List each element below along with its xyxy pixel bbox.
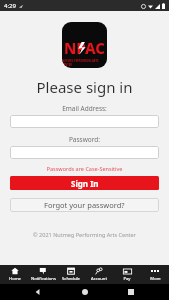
staticText: More xyxy=(150,276,161,282)
button[interactable]: Recents xyxy=(122,284,140,300)
staticText: Schedule xyxy=(62,276,80,282)
button[interactable] xyxy=(10,146,159,159)
staticText: 4:29 xyxy=(4,2,16,10)
staticText: NUTMEG PERFORMING ARTS CENTER xyxy=(62,59,107,67)
button[interactable]: Sign In xyxy=(10,176,159,190)
button[interactable]: Home xyxy=(0,265,29,284)
staticText: Notifications xyxy=(31,276,56,282)
staticText: Account xyxy=(91,276,107,282)
staticText: Sign In xyxy=(71,178,99,189)
staticText: NPAC xyxy=(64,38,105,58)
button[interactable]: Notifications xyxy=(29,265,57,284)
button[interactable]: Home xyxy=(76,284,94,300)
staticText: © 2021 Nutmeg Performing Arts Center xyxy=(10,231,159,238)
button[interactable]: Pay xyxy=(113,265,141,284)
button[interactable]: More xyxy=(141,265,169,284)
staticText: Home xyxy=(9,276,21,282)
button[interactable] xyxy=(10,115,159,128)
staticText: Forgot your password? xyxy=(44,200,125,210)
staticText: Passwords are Case-Sensitive xyxy=(10,165,159,172)
button[interactable]: Forgot your password? xyxy=(10,198,159,212)
button[interactable]: Back xyxy=(29,284,47,300)
staticText: Please sign in xyxy=(10,77,159,97)
staticText: Email Address: xyxy=(10,104,159,113)
button[interactable]: Schedule xyxy=(57,265,85,284)
staticText: Password: xyxy=(10,135,159,144)
button[interactable]: Account xyxy=(85,265,113,284)
staticText: Pay xyxy=(123,276,131,282)
